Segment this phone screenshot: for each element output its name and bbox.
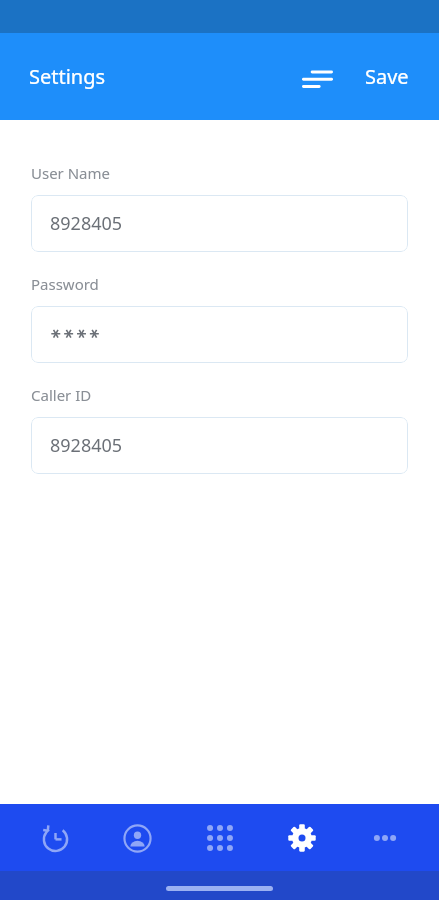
button[interactable]: Dialpad	[192, 810, 248, 866]
staticText: User Name	[31, 163, 111, 183]
button[interactable]: Contacts	[109, 810, 165, 866]
button[interactable]: Settings	[23, 55, 112, 98]
button[interactable]: Save	[359, 55, 415, 98]
staticText: 8928405	[50, 211, 123, 236]
button[interactable]: 8928405	[31, 195, 408, 252]
staticText: 8928405	[50, 433, 123, 458]
button[interactable]	[31, 306, 408, 363]
button[interactable]: Settings	[274, 810, 330, 866]
staticText: Caller ID	[31, 385, 92, 405]
button[interactable]: 8928405	[31, 417, 408, 474]
button[interactable]: Sort	[293, 53, 341, 101]
staticText: Password	[31, 274, 99, 294]
staticText: Save	[365, 63, 409, 90]
staticText: Settings	[29, 63, 106, 90]
button[interactable]: More options	[357, 810, 413, 866]
button[interactable]: Recent calls	[27, 810, 83, 866]
